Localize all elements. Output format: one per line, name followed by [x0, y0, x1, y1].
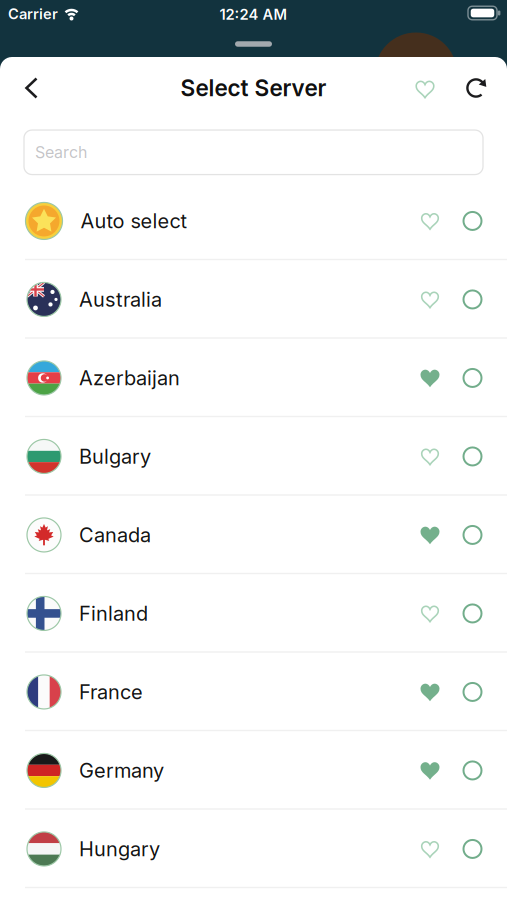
button[interactable]: [463, 683, 481, 701]
button[interactable]: Hungary: [0, 810, 507, 888]
button[interactable]: [463, 212, 481, 230]
staticText: Germany: [79, 759, 164, 782]
button[interactable]: [463, 526, 481, 544]
button[interactable]: [463, 761, 481, 779]
button[interactable]: Australia: [0, 260, 507, 339]
staticText: Auto select: [80, 209, 187, 233]
button[interactable]: [25, 77, 38, 98]
button[interactable]: [466, 77, 487, 98]
button[interactable]: Finland: [0, 574, 507, 653]
button[interactable]: Germany: [0, 731, 507, 810]
staticText: Select Server: [180, 75, 326, 101]
button[interactable]: Bulgary: [0, 417, 507, 496]
button[interactable]: France: [0, 653, 507, 731]
button[interactable]: Canada: [0, 496, 507, 574]
button[interactable]: [420, 761, 439, 780]
button[interactable]: [463, 840, 481, 858]
staticText: Azerbaijan: [79, 366, 180, 390]
button[interactable]: Search: [24, 130, 483, 175]
staticText: Canada: [79, 523, 151, 547]
button[interactable]: [420, 447, 439, 466]
staticText: France: [79, 680, 143, 704]
button[interactable]: [420, 839, 439, 858]
button[interactable]: [420, 368, 439, 387]
button[interactable]: [463, 290, 481, 308]
button[interactable]: [420, 682, 439, 701]
button[interactable]: [463, 369, 481, 387]
staticText: Hungary: [79, 837, 160, 861]
staticText: Finland: [79, 602, 148, 625]
staticText: Carrier: [8, 5, 58, 23]
staticText: Search: [35, 143, 87, 162]
staticText: Australia: [79, 288, 162, 311]
staticText: Bulgary: [79, 445, 151, 468]
button[interactable]: [420, 604, 439, 623]
button[interactable]: [463, 447, 481, 465]
button[interactable]: [415, 79, 435, 99]
button[interactable]: [463, 604, 481, 622]
button[interactable]: Auto select: [0, 182, 507, 260]
button[interactable]: [420, 211, 439, 230]
button[interactable]: [420, 525, 439, 544]
button[interactable]: Azerbaijan: [0, 339, 507, 417]
staticText: 12:24 AM: [219, 6, 287, 23]
button[interactable]: [420, 290, 439, 309]
